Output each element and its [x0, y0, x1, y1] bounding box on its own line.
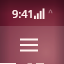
staticText: 9:41	[12, 6, 34, 21]
button[interactable]: Menu	[10, 26, 48, 64]
